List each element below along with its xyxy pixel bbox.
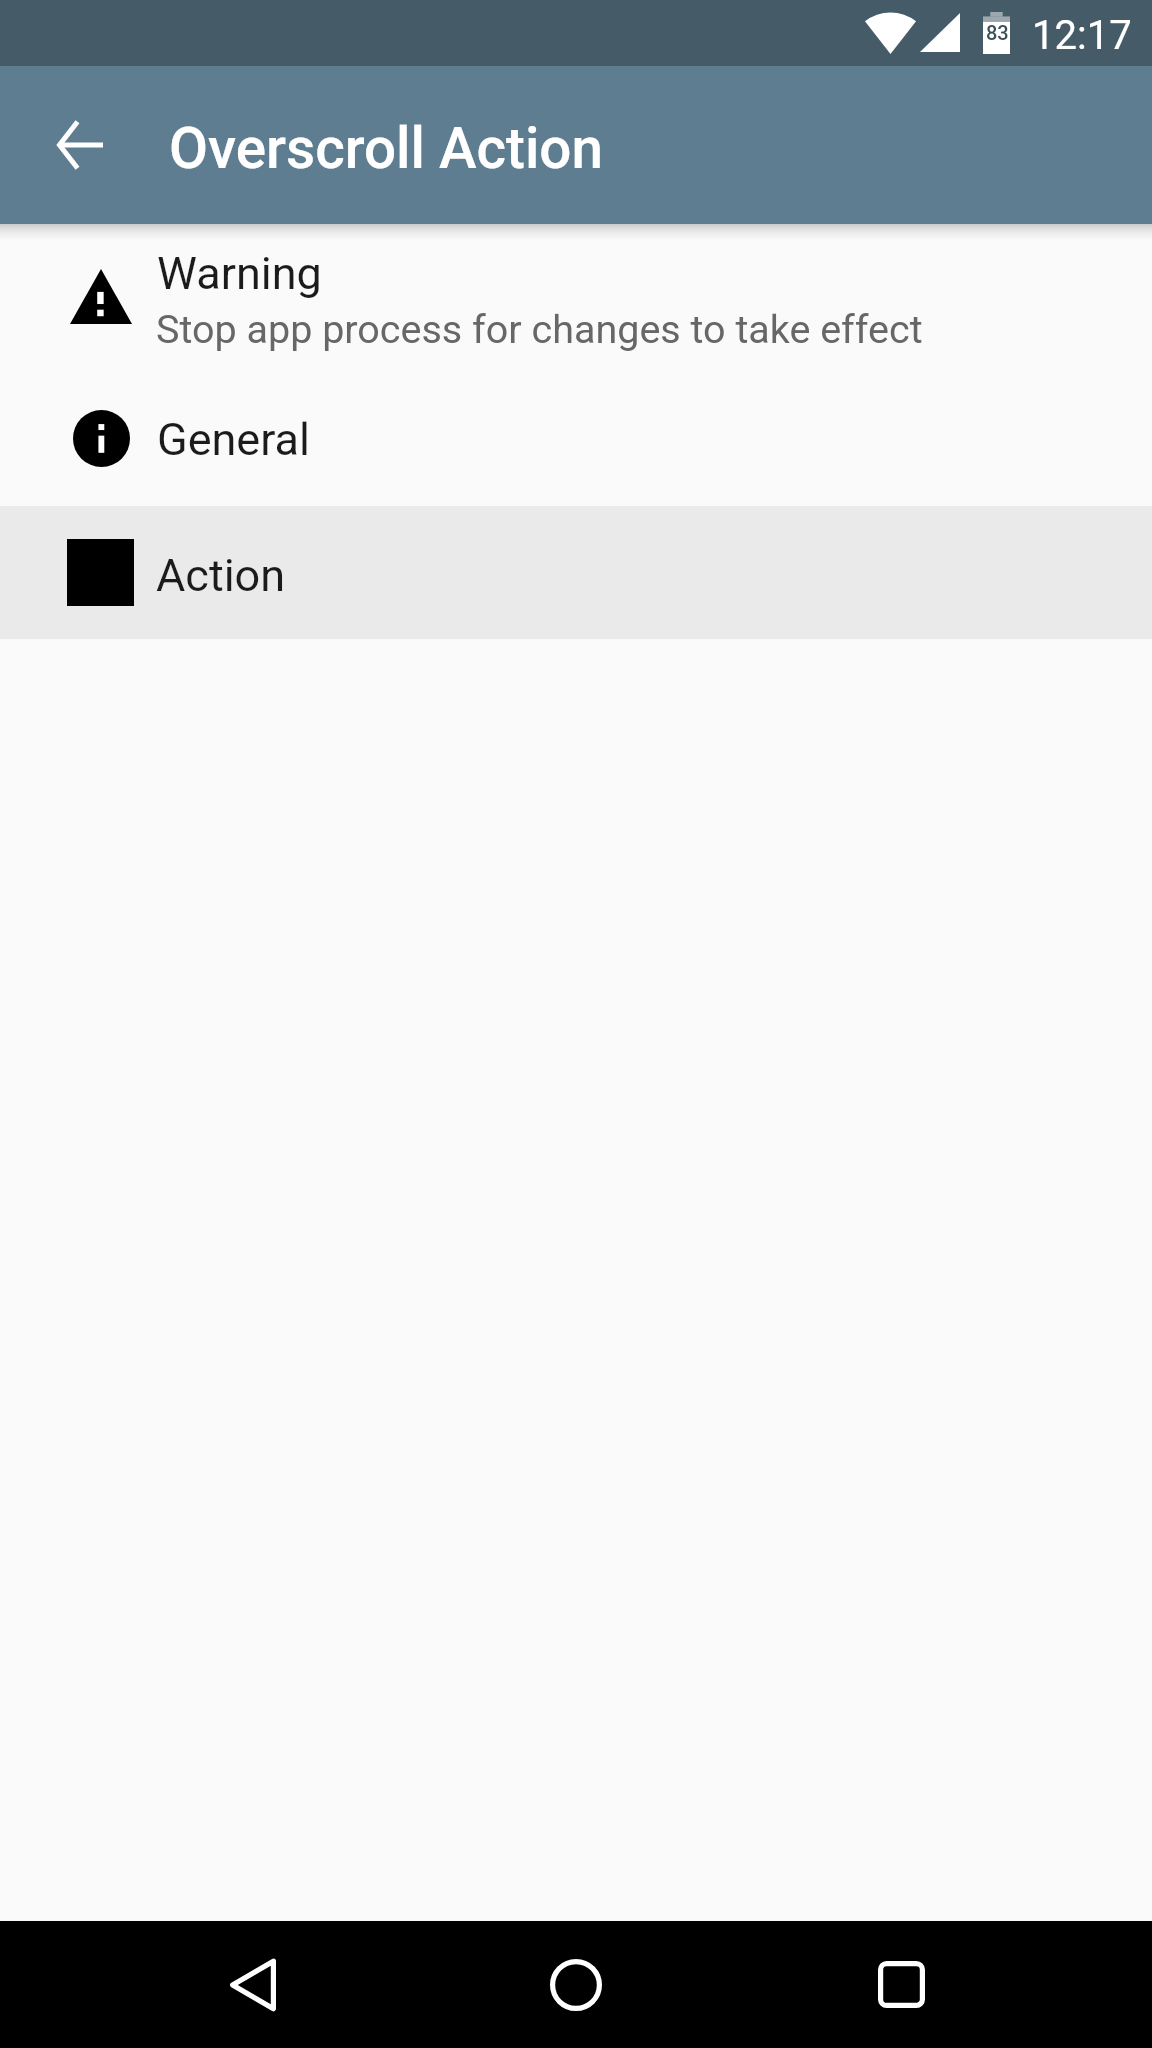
- button[interactable]: Navigate up: [44, 109, 116, 181]
- staticText: Overscroll Action: [169, 115, 603, 181]
- staticText: 12:17: [1032, 12, 1132, 59]
- staticText: 83: [986, 21, 1009, 44]
- button[interactable]: Warning: [0, 224, 1152, 384]
- staticText: Warning: [157, 247, 322, 300]
- staticText: Stop app process for changes to take eff…: [156, 306, 923, 352]
- button[interactable]: Home: [512, 1921, 640, 2048]
- staticText: Action: [156, 549, 286, 602]
- staticText: General: [157, 413, 311, 466]
- button[interactable]: General: [0, 384, 1152, 506]
- button[interactable]: Back: [189, 1921, 317, 2048]
- button[interactable]: Action: [0, 506, 1152, 639]
- button[interactable]: Recent apps: [837, 1921, 965, 2048]
